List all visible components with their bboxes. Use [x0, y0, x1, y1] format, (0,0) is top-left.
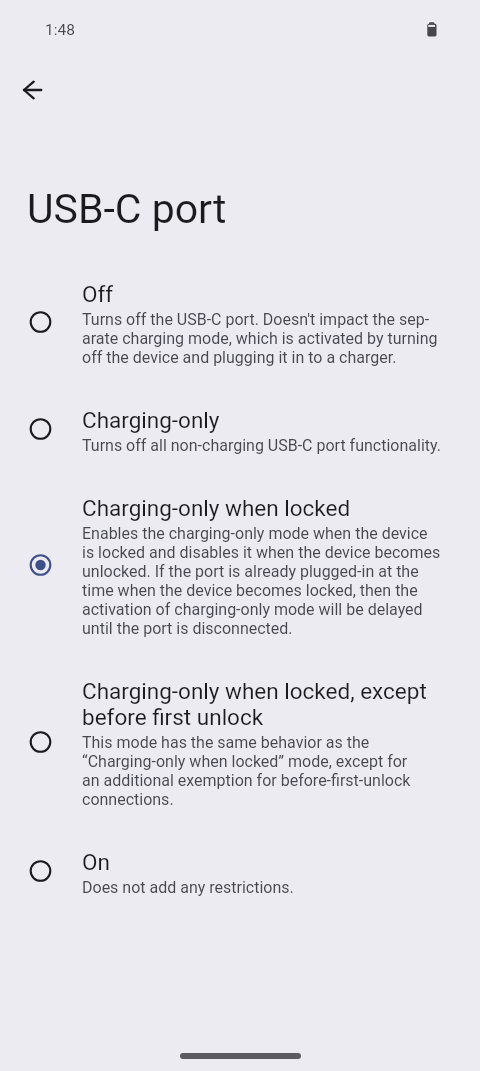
staticText: USB-C port	[27, 185, 227, 233]
button[interactable]: Off	[0, 261, 480, 387]
staticText: Enables the charging-only mode when the …	[82, 524, 441, 638]
staticText: This mode has the same behavior as the “…	[82, 733, 411, 809]
staticText: Charging-only when locked	[82, 495, 351, 521]
button[interactable]: Navigate up	[8, 66, 56, 114]
staticText: Charging-only when locked, except before…	[82, 678, 427, 730]
button[interactable]: Charging-only when locked	[0, 475, 480, 658]
staticText: 1:48	[45, 21, 75, 39]
staticText: Turns off the USB-C port. Doesn't impact…	[82, 310, 438, 367]
staticText: Off	[82, 281, 114, 307]
staticText: Charging-only	[82, 407, 220, 433]
staticText: On	[82, 849, 110, 875]
staticText: Turns off all non-charging USB-C port fu…	[82, 436, 441, 455]
button[interactable]: Charging-only when locked, except before…	[0, 658, 480, 829]
staticText: Does not add any restrictions.	[82, 878, 294, 897]
button[interactable]: On	[0, 829, 480, 917]
button[interactable]: Charging-only	[0, 387, 480, 475]
